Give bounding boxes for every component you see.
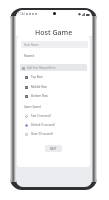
staticText: 11:44 (18, 12, 25, 16)
staticText: Host Game (35, 28, 73, 38)
staticText: Middle Row (31, 85, 47, 89)
button[interactable]: Fast (3 second) (17, 112, 90, 120)
button[interactable]: Add Your Reward Here (20, 64, 87, 71)
button[interactable]: Bottom Row (17, 92, 90, 100)
button[interactable]: Top Row (17, 73, 90, 81)
staticText: Top Row (31, 75, 43, 79)
staticText: Fast (3 second) (31, 114, 51, 118)
button[interactable]: Host Name (21, 41, 88, 48)
staticText: Reward (24, 54, 34, 58)
button[interactable]: Default (5 second) (17, 121, 90, 129)
staticText: Bottom Row (31, 94, 48, 98)
staticText: Default (5 second) (31, 123, 55, 127)
staticText: Host Name (24, 43, 39, 47)
staticText: Slow (10 second) (31, 132, 53, 136)
staticText: Game Speed (24, 105, 41, 109)
button[interactable]: NEXT (45, 145, 62, 152)
button[interactable]: Slow (10 second) (17, 130, 90, 138)
staticText: Add Your Reward Here (27, 66, 56, 70)
staticText: NEXT (50, 147, 57, 151)
button[interactable]: Middle Row (17, 83, 90, 91)
